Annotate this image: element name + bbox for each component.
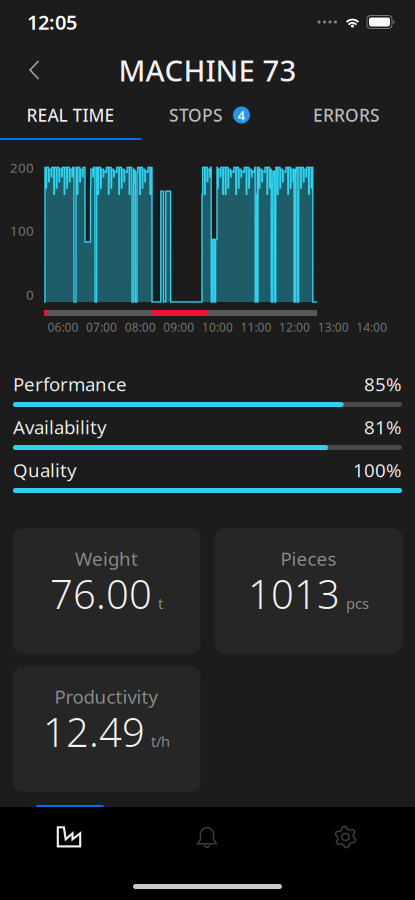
button[interactable]: REAL TIME (0, 96, 141, 134)
staticText: 10:00 (202, 319, 233, 335)
staticText: Pieces (280, 546, 336, 571)
staticText: 81% (364, 415, 402, 439)
staticText: 12.49 (43, 705, 145, 758)
staticText: 07:00 (86, 319, 117, 335)
staticText: 14:00 (356, 319, 387, 335)
staticText: 200 (10, 159, 34, 176)
staticText: 1013 (248, 567, 340, 620)
staticText: Availability (13, 415, 107, 439)
staticText: 08:00 (125, 319, 156, 335)
staticText: 76.00 (50, 567, 152, 620)
staticText: 12:05 (27, 9, 77, 35)
button[interactable]: STOPS (141, 96, 278, 134)
staticText: pcs (346, 594, 369, 613)
staticText: STOPS (169, 103, 223, 126)
staticText: 06:00 (47, 319, 78, 335)
staticText: REAL TIME (26, 103, 114, 126)
staticText: Quality (13, 458, 77, 482)
staticText: Weight (75, 546, 138, 571)
button[interactable]: Back (12, 48, 56, 92)
staticText: 11:00 (240, 319, 271, 335)
button[interactable]: Alerts (138, 810, 276, 864)
staticText: Productivity (54, 684, 158, 709)
staticText: t (158, 594, 163, 613)
staticText: MACHINE 73 (118, 50, 296, 89)
button[interactable]: Machines (0, 810, 138, 864)
staticText: 0 (26, 286, 34, 303)
staticText: t/h (151, 732, 170, 751)
button[interactable]: ERRORS (278, 96, 415, 134)
staticText: Performance (13, 372, 127, 396)
staticText: 4 (237, 106, 245, 124)
staticText: 100 (10, 222, 34, 239)
staticText: 100% (353, 458, 402, 482)
staticText: ERRORS (313, 103, 380, 126)
staticText: 13:00 (318, 319, 349, 335)
staticText: 12:00 (279, 319, 310, 335)
staticText: 09:00 (163, 319, 194, 335)
button[interactable]: Settings (276, 810, 415, 864)
staticText: 85% (364, 372, 402, 396)
